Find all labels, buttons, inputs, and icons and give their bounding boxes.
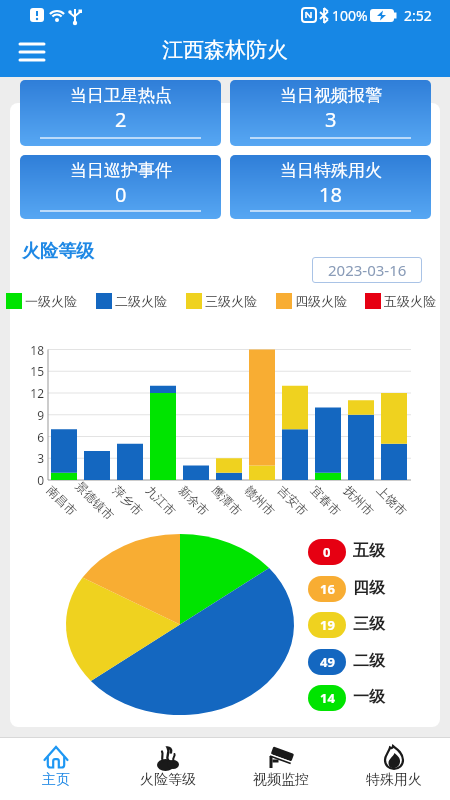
- staticText: 赣州市: [242, 482, 278, 519]
- button[interactable]: 当日特殊用火: [230, 155, 431, 219]
- staticText: 0: [22, 472, 44, 488]
- staticText: 抚州市: [341, 482, 377, 519]
- staticText: 景德镇市: [73, 478, 117, 523]
- staticText: 三级: [353, 614, 385, 634]
- staticText: 萍乡市: [110, 482, 146, 519]
- staticText: 鹰潭市: [209, 482, 245, 519]
- staticText: 当日巡护事件: [70, 160, 172, 181]
- staticText: 2:52: [404, 6, 432, 25]
- button[interactable]: 特殊用火: [337, 738, 450, 800]
- staticText: 五级: [353, 541, 385, 561]
- staticText: 18: [319, 181, 342, 208]
- staticText: 2: [115, 106, 127, 133]
- staticText: 主页: [42, 771, 70, 789]
- staticText: 南昌市: [44, 482, 80, 519]
- staticText: 16: [320, 580, 335, 598]
- button[interactable]: 当日视频报警: [230, 80, 431, 146]
- staticText: 18: [22, 342, 44, 358]
- staticText: 三级火险: [205, 293, 257, 309]
- staticText: 0: [323, 543, 331, 561]
- button[interactable]: 当日卫星热点: [20, 80, 221, 146]
- staticText: 二级火险: [115, 293, 167, 309]
- staticText: 当日卫星热点: [70, 85, 172, 106]
- staticText: 宜春市: [308, 482, 344, 519]
- staticText: 一级火险: [25, 293, 77, 309]
- staticText: 49: [320, 653, 335, 671]
- staticText: 2023-03-16: [328, 260, 407, 280]
- staticText: 一级: [353, 687, 385, 707]
- staticText: 9: [22, 407, 44, 423]
- staticText: 二级: [353, 651, 385, 671]
- button[interactable]: 2023-03-16: [312, 257, 422, 283]
- staticText: 吉安市: [275, 482, 311, 519]
- staticText: 当日视频报警: [280, 85, 382, 106]
- staticText: 特殊用火: [366, 771, 422, 789]
- staticText: 19: [320, 616, 335, 634]
- staticText: 火险等级: [22, 240, 94, 263]
- staticText: 四级火险: [295, 293, 347, 309]
- button[interactable]: [14, 38, 50, 66]
- staticText: 3: [22, 450, 44, 466]
- staticText: 3: [325, 106, 337, 133]
- staticText: 14: [320, 689, 335, 707]
- staticText: 0: [115, 181, 127, 208]
- staticText: 12: [22, 385, 44, 401]
- button[interactable]: 视频监控: [224, 738, 337, 800]
- button[interactable]: 主页: [0, 738, 112, 800]
- staticText: 江西森林防火: [0, 37, 450, 63]
- button[interactable]: 火险等级: [112, 738, 224, 800]
- staticText: 当日特殊用火: [280, 160, 382, 181]
- staticText: 新余市: [176, 482, 212, 519]
- staticText: 上饶市: [374, 482, 410, 519]
- staticText: 视频监控: [253, 771, 309, 789]
- staticText: 九江市: [143, 482, 179, 519]
- staticText: 100%: [332, 6, 368, 25]
- staticText: 四级: [353, 578, 385, 598]
- staticText: 15: [22, 363, 44, 379]
- staticText: 6: [22, 429, 44, 445]
- staticText: 五级火险: [384, 293, 436, 309]
- button[interactable]: 当日巡护事件: [20, 155, 221, 219]
- staticText: 火险等级: [140, 771, 196, 789]
